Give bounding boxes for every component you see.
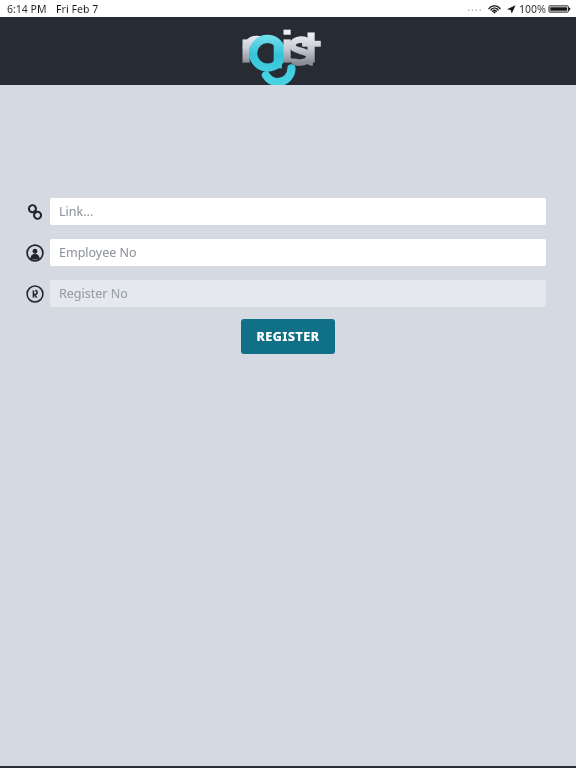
button[interactable]: Register No [50,280,546,307]
staticText: Fri Feb 7 [56,2,99,16]
staticText: REGISTER [256,328,320,345]
other: Link [25,202,45,222]
staticText: Register No [59,285,128,302]
staticText: 100% [519,2,546,16]
other: Employee [25,243,45,263]
button[interactable]: REGISTER [241,319,335,354]
staticText: 6:14 PM [7,2,47,16]
button[interactable]: Employee No [50,239,546,266]
staticText: Employee No [59,244,137,261]
other: rgist [238,22,338,80]
other: Register [25,284,45,304]
staticText: Link... [59,203,94,220]
button[interactable]: Link... [50,198,546,225]
